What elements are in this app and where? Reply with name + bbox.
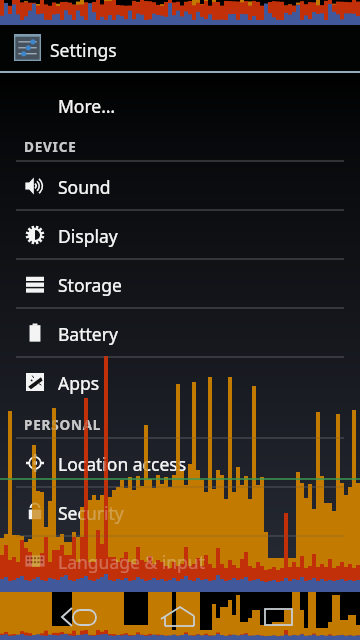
button[interactable]: Language & input [0, 537, 360, 586]
staticText: Storage [58, 273, 122, 297]
staticText: Storage [58, 273, 122, 297]
button[interactable]: Sound [0, 162, 360, 211]
staticText: Security [58, 501, 124, 525]
button[interactable]: Language & input [0, 537, 360, 586]
button[interactable]: Battery [0, 309, 360, 358]
button[interactable]: Sound [0, 162, 360, 211]
staticText: Display [58, 224, 118, 248]
button[interactable]: Storage [0, 260, 360, 309]
staticText: Apps [58, 371, 100, 395]
staticText: More… [58, 94, 116, 118]
staticText: DEVICE [24, 138, 77, 156]
staticText: Language & input [58, 550, 205, 574]
button[interactable]: Battery [0, 309, 360, 358]
button[interactable]: Display [0, 211, 360, 260]
button[interactable]: Display [0, 211, 360, 260]
staticText: Display [58, 224, 118, 248]
staticText: Sound [58, 175, 111, 199]
button[interactable]: Storage [0, 260, 360, 309]
staticText: DEVICE [24, 138, 77, 156]
button[interactable]: More… [0, 81, 360, 130]
button[interactable]: Security [0, 488, 360, 537]
staticText: Apps [58, 371, 100, 395]
button[interactable]: Home [128, 592, 228, 640]
button[interactable]: More… [0, 81, 360, 130]
button[interactable]: Location access [0, 439, 360, 488]
staticText: More… [58, 94, 116, 118]
button[interactable]: Apps [0, 358, 360, 407]
button[interactable]: Recent apps [228, 592, 328, 640]
staticText: Language & input [58, 550, 205, 574]
button[interactable]: Back [28, 592, 128, 640]
staticText: Location access [58, 452, 187, 476]
button[interactable]: Apps [0, 358, 360, 407]
staticText: PERSONAL [24, 416, 102, 434]
staticText: Sound [58, 175, 111, 199]
staticText: Security [58, 501, 124, 525]
staticText: Battery [58, 322, 118, 346]
staticText: Battery [58, 322, 118, 346]
staticText: PERSONAL [24, 416, 102, 434]
button[interactable]: Location access [0, 439, 360, 488]
staticText: Location access [58, 452, 187, 476]
staticText: Settings [50, 38, 117, 62]
button[interactable]: Security [0, 488, 360, 537]
